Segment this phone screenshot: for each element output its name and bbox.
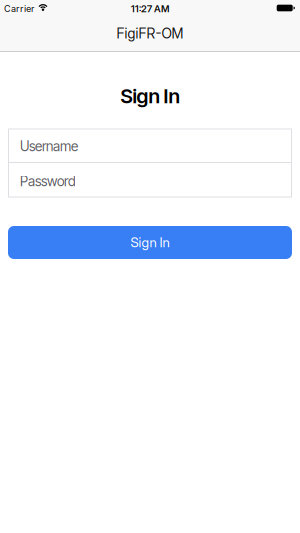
staticText: Carrier (4, 3, 34, 14)
staticText: Password (20, 173, 76, 189)
staticText: 11:27 AM (131, 3, 169, 15)
button[interactable]: Sign In (8, 226, 292, 259)
staticText: FigiFR-OM (116, 25, 183, 42)
staticText: Sign In (120, 84, 179, 108)
button[interactable]: Username text field (8, 128, 292, 162)
staticText: Username (20, 138, 78, 154)
staticText: Sign In (130, 234, 169, 250)
button[interactable]: Password text field (8, 163, 292, 197)
